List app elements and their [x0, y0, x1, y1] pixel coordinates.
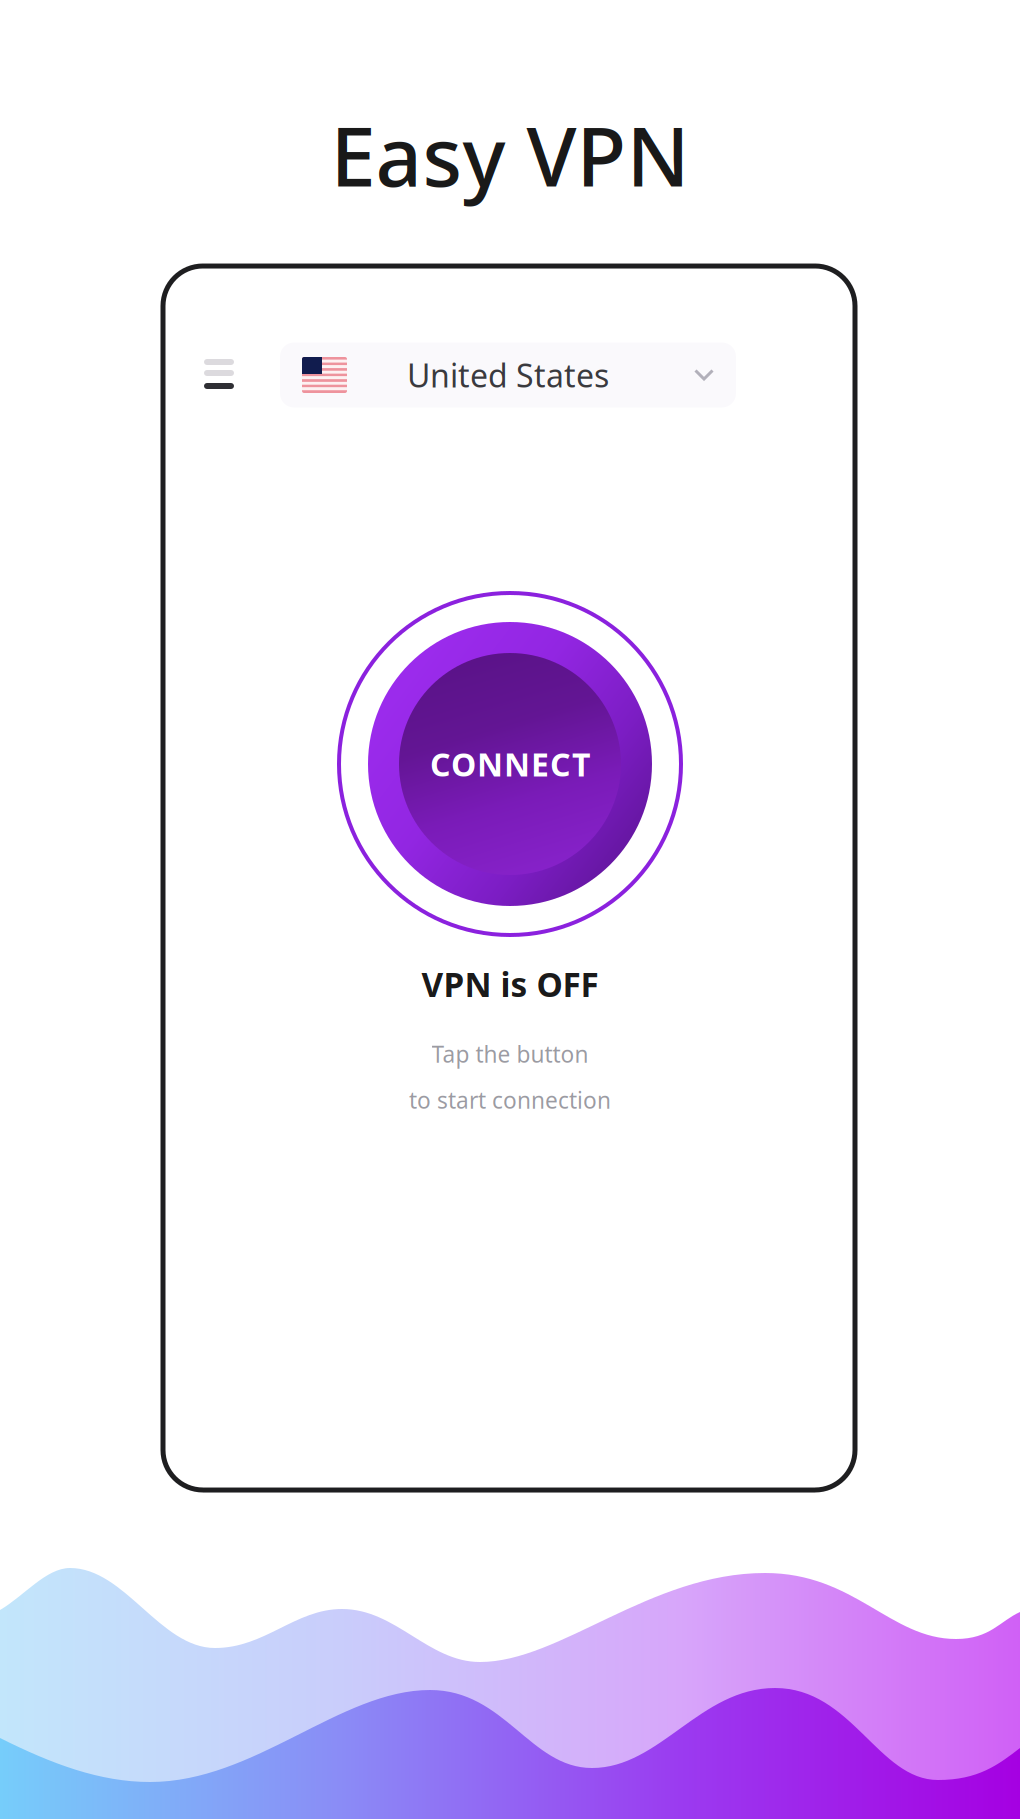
button[interactable]: CONNECT	[368, 622, 652, 906]
staticText: CONNECT	[430, 743, 590, 785]
staticText: VPN is OFF	[421, 962, 598, 1006]
staticText: Easy VPN	[330, 101, 689, 209]
staticText: United States	[407, 354, 609, 396]
button[interactable]: Menu	[190, 343, 248, 405]
button[interactable]: United States	[280, 342, 736, 407]
staticText: Tap the button	[431, 1039, 588, 1069]
staticText: to start connection	[409, 1085, 611, 1115]
